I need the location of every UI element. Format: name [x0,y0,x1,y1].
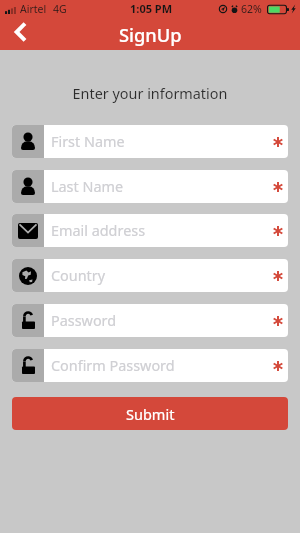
staticText: Email address [51,221,278,241]
staticText: 62% [241,2,262,16]
staticText: SignUp [119,22,182,47]
button[interactable]: Email address [12,214,288,247]
staticText: 4G [53,2,67,16]
button[interactable]: First Name [12,125,288,158]
button[interactable]: Confirm Password [12,349,288,382]
staticText: Confirm Password [51,356,278,376]
button[interactable]: Submit [12,397,288,430]
staticText: Last Name [51,177,278,197]
button[interactable]: Back [4,15,36,48]
button[interactable]: Country [12,259,288,292]
staticText: Password [51,311,278,331]
button[interactable]: Password [12,304,288,337]
staticText: Country [51,266,278,286]
staticText: Submit [126,404,175,424]
button[interactable]: Last Name [12,170,288,203]
staticText: Airtel [20,2,47,16]
staticText: First Name [51,132,278,152]
staticText: 1:05 PM [130,1,173,16]
staticText: Enter your information [0,84,300,104]
